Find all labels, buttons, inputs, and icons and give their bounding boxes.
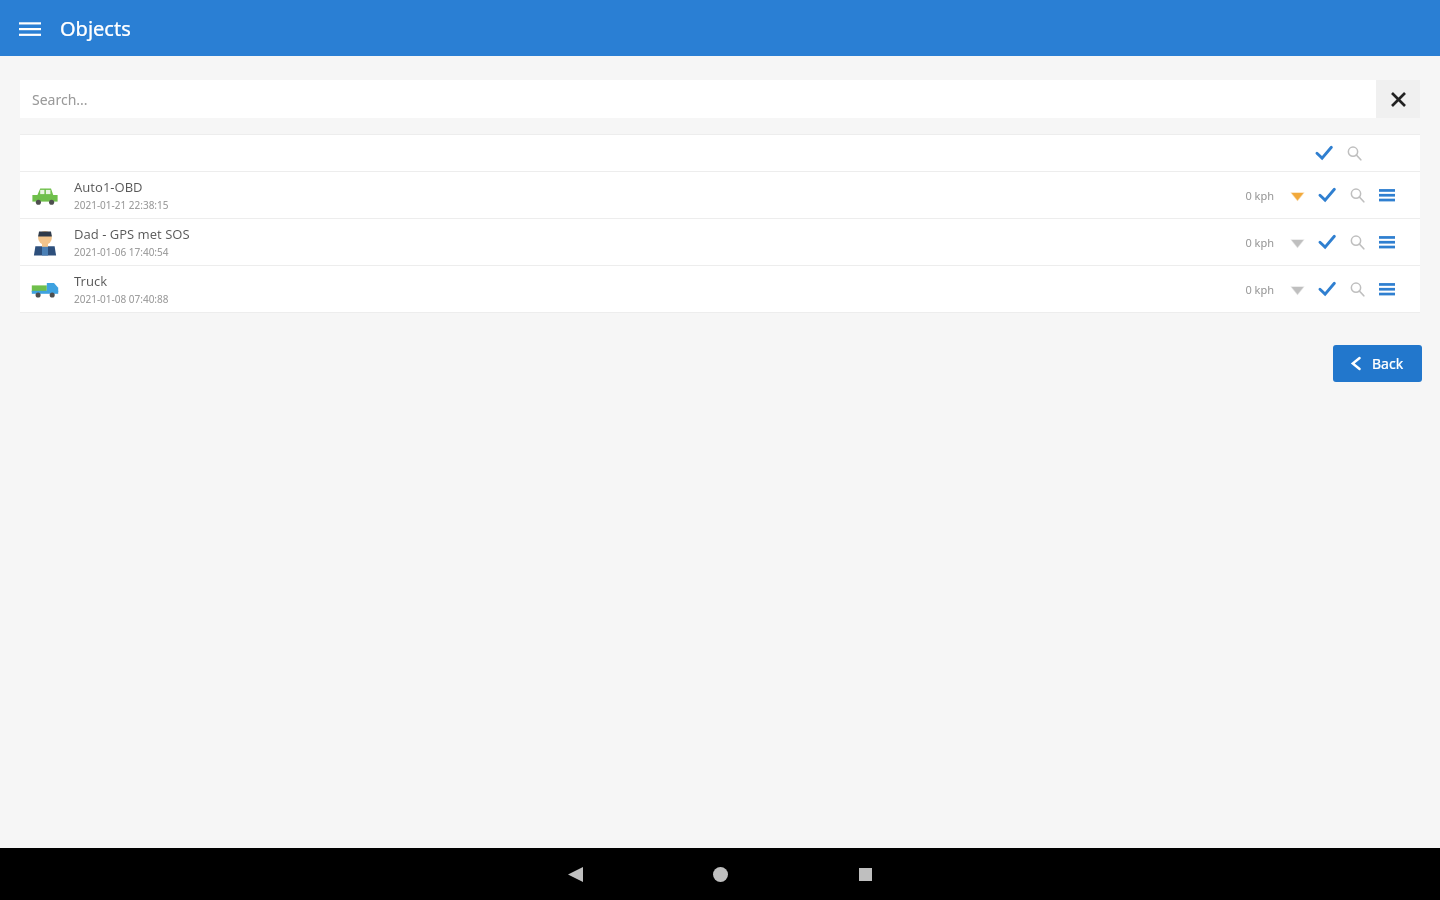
button[interactable]: Find [1346,278,1368,300]
button[interactable]: Recent apps [845,854,885,894]
button[interactable]: Auto1-OBD [20,172,1420,218]
button[interactable]: Signal [1286,231,1308,253]
staticText: 2021-01-08 07:40:88 [74,292,169,306]
staticText: 2021-01-21 22:38:15 [74,198,169,212]
button[interactable]: Back [555,854,595,894]
button[interactable]: Menu [14,12,46,44]
button[interactable]: Search... [20,80,1376,118]
button[interactable]: More options [1376,278,1398,300]
button[interactable]: Dad - GPS met SOS [20,219,1420,265]
button[interactable]: Search all [1343,142,1365,164]
button[interactable]: Find [1346,231,1368,253]
button[interactable]: Select [1316,184,1338,206]
button[interactable]: Back [1333,345,1422,382]
staticText: 0 kph [1245,235,1274,250]
staticText: Search... [32,90,88,109]
button[interactable]: Select [1316,278,1338,300]
button[interactable]: More options [1376,231,1398,253]
staticText: Truck [74,272,108,290]
staticText: Dad - GPS met SOS [74,225,190,243]
staticText: Objects [60,15,131,42]
button[interactable]: More options [1376,184,1398,206]
staticText: 0 kph [1245,282,1274,297]
button[interactable]: Truck [20,266,1420,312]
button[interactable]: Select [1316,231,1338,253]
button[interactable]: Clear search [1376,80,1420,118]
button[interactable]: Signal [1286,184,1308,206]
staticText: 2021-01-06 17:40:54 [74,245,169,259]
staticText: Back [1372,354,1404,373]
staticText: Auto1-OBD [74,178,143,196]
button[interactable]: Select all [1313,142,1335,164]
staticText: 0 kph [1245,188,1274,203]
button[interactable]: Signal [1286,278,1308,300]
button[interactable]: Home [700,854,740,894]
button[interactable]: Find [1346,184,1368,206]
